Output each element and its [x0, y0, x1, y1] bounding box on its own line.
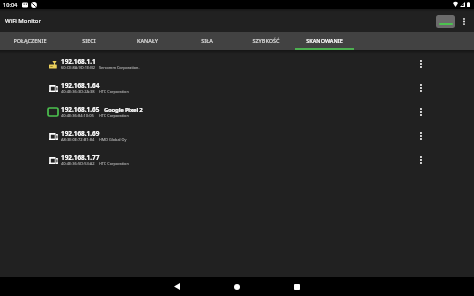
- button[interactable]: Device options: [411, 125, 431, 147]
- staticText: HTC Corporation: [99, 89, 129, 94]
- staticText: KANAŁY: [137, 37, 158, 44]
- staticText: 192.168.1.65: [61, 105, 100, 114]
- button[interactable]: SKANOWANIE: [295, 32, 354, 50]
- staticText: SIECI: [82, 37, 96, 44]
- staticText: 40:4E:36:84:10:05: [61, 113, 94, 118]
- staticText: 192.168.1.64: [61, 81, 100, 90]
- button[interactable]: Signal level: [436, 15, 455, 28]
- button[interactable]: KANAŁY: [118, 32, 177, 50]
- button[interactable]: Back: [163, 277, 191, 296]
- button[interactable]: POŁĄCZENIE: [0, 32, 59, 50]
- button[interactable]: Device options: [411, 77, 431, 99]
- staticText: POŁĄCZENIE: [13, 37, 47, 44]
- button[interactable]: 192.168.1.1: [0, 52, 474, 76]
- button[interactable]: 192.168.1.64: [0, 76, 474, 100]
- staticText: HMD Global Oy: [99, 137, 127, 142]
- staticText: 192.168.1.69: [61, 129, 100, 138]
- staticText: 10:04: [3, 1, 18, 9]
- button[interactable]: More options: [455, 11, 472, 31]
- staticText: SZYBKOŚĆ: [252, 37, 280, 44]
- button[interactable]: Recents: [283, 277, 311, 296]
- button[interactable]: SIŁA: [177, 32, 236, 50]
- staticText: 40:4E:36:3D:2A:38: [61, 89, 95, 94]
- staticText: HTC Corporation: [99, 113, 129, 118]
- staticText: SIŁA: [201, 37, 213, 44]
- button[interactable]: Device options: [411, 53, 431, 75]
- staticText: HTC Corporation: [99, 161, 129, 166]
- button[interactable]: Device options: [411, 101, 431, 123]
- staticText: Google Pixel 2: [104, 106, 143, 114]
- button[interactable]: SZYBKOŚĆ: [236, 32, 295, 50]
- button[interactable]: 192.168.1.77: [0, 148, 474, 172]
- button[interactable]: 192.168.1.69: [0, 124, 474, 148]
- button[interactable]: 192.168.1.65: [0, 100, 474, 124]
- staticText: Sercomm Corporation.: [99, 65, 140, 70]
- staticText: SKANOWANIE: [306, 37, 343, 44]
- button[interactable]: Home: [223, 277, 251, 296]
- button[interactable]: SIECI: [59, 32, 118, 50]
- staticText: 40:4E:36:5D:53:A2: [61, 161, 95, 166]
- button[interactable]: Device options: [411, 149, 431, 171]
- staticText: 192.168.1.1: [61, 57, 96, 66]
- staticText: WiFi Monitor: [5, 17, 41, 25]
- staticText: 60:CE:8A:9D:1E:B2: [61, 65, 96, 70]
- staticText: A8:3E:0E:72:B1:84: [61, 137, 95, 142]
- staticText: 192.168.1.77: [61, 153, 100, 162]
